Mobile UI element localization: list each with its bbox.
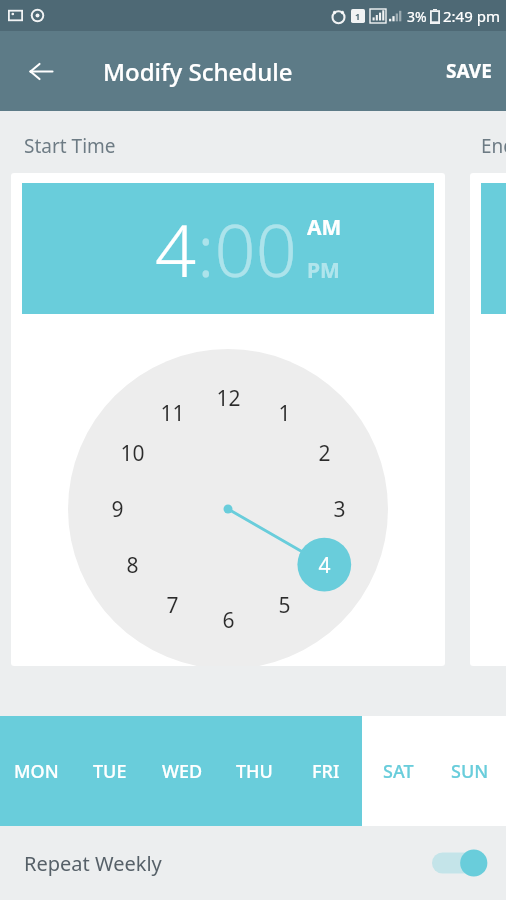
staticText: 8: [126, 551, 139, 580]
staticText: Start Time: [24, 133, 116, 159]
staticText: 11: [160, 399, 185, 428]
button[interactable]: TUE: [73, 716, 146, 826]
staticText: 3: [333, 495, 346, 524]
button[interactable]: Clock face: [68, 349, 388, 666]
staticText: 12: [216, 384, 241, 413]
staticText: TUE: [93, 759, 127, 784]
staticText: 6: [222, 606, 235, 635]
button[interactable]: Repeat Weekly: [0, 826, 506, 900]
button[interactable]: AM: [307, 213, 342, 242]
button[interactable]: PM: [307, 256, 340, 285]
staticText: Modify Schedule: [103, 55, 293, 88]
staticText: SAVE: [446, 58, 492, 84]
button[interactable]: WED: [146, 716, 218, 826]
staticText: :00: [197, 200, 297, 298]
button[interactable]: 4: [22, 183, 434, 314]
staticText: SAT: [383, 759, 414, 784]
staticText: 7: [166, 591, 179, 620]
staticText: 4: [318, 551, 331, 580]
staticText: End: [481, 133, 506, 159]
staticText: 1: [355, 10, 361, 22]
button[interactable]: Back: [17, 47, 65, 95]
staticText: 2: [318, 439, 331, 468]
staticText: 1: [278, 399, 291, 428]
button[interactable]: THU: [218, 716, 290, 826]
staticText: 2:49 pm: [443, 6, 500, 26]
button[interactable]: SUN: [434, 716, 506, 826]
staticText: FRI: [312, 759, 340, 784]
staticText: Repeat Weekly: [24, 850, 162, 877]
staticText: WED: [162, 759, 203, 784]
staticText: 9: [111, 495, 124, 524]
button[interactable]: MON: [0, 716, 73, 826]
button[interactable]: SAT: [362, 716, 434, 826]
staticText: SUN: [451, 759, 489, 784]
staticText: 5: [278, 591, 291, 620]
staticText: 10: [120, 439, 145, 468]
staticText: MON: [14, 759, 59, 784]
button[interactable]: SAVE: [432, 31, 506, 111]
staticText: THU: [236, 759, 273, 784]
staticText: 4: [155, 200, 197, 298]
staticText: 3%: [407, 7, 427, 26]
button[interactable]: FRI: [290, 716, 362, 826]
